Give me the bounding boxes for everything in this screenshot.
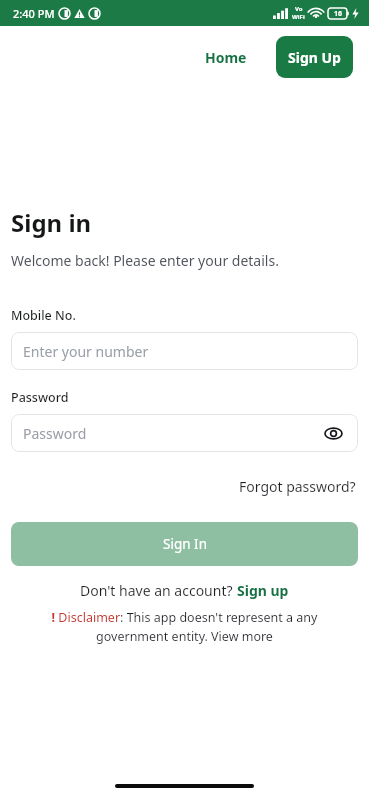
button[interactable]: Sign Up <box>276 36 353 78</box>
staticText: Forgot password? <box>239 477 356 496</box>
button[interactable]: Home <box>195 42 257 73</box>
staticText: Password <box>11 389 69 406</box>
staticText: WiFi <box>292 13 305 21</box>
staticText: Sign In <box>163 535 207 553</box>
staticText: Vo <box>295 5 303 13</box>
button[interactable]: Sign up <box>237 581 289 600</box>
staticText: Don't have an account? <box>80 581 237 600</box>
staticText: Password <box>23 424 320 443</box>
button[interactable]: Sign In <box>11 522 358 566</box>
staticText: ! Disclaimer: This app doesn't represent… <box>29 609 340 645</box>
staticText: 16 <box>334 9 343 19</box>
staticText: Sign up <box>237 581 289 600</box>
staticText: Welcome back! Please enter your details. <box>11 251 279 270</box>
staticText: Enter your number <box>23 342 149 361</box>
button[interactable]: Forgot password? <box>237 475 358 498</box>
staticText: Sign in <box>11 206 92 239</box>
button[interactable]: Show password <box>320 420 346 446</box>
staticText: Mobile No. <box>11 307 76 324</box>
button[interactable]: Enter your number <box>11 332 358 370</box>
button[interactable]: Password <box>11 414 358 452</box>
staticText: Sign Up <box>288 48 341 67</box>
staticText: 2:40 PM <box>13 6 55 21</box>
staticText: Home <box>205 48 247 67</box>
